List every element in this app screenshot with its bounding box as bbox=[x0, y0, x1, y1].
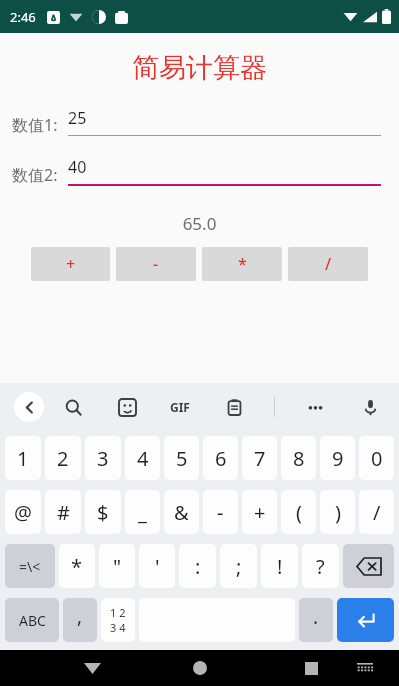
staticText: 简易计算器 bbox=[0, 51, 399, 85]
staticText: , bbox=[77, 603, 83, 629]
staticText: ? bbox=[316, 553, 325, 580]
button[interactable]: + bbox=[242, 490, 277, 534]
button[interactable]: 3 bbox=[85, 436, 121, 480]
staticText: + bbox=[254, 499, 266, 526]
staticText: ) bbox=[335, 499, 341, 526]
button[interactable]: Voice input bbox=[355, 392, 385, 422]
button[interactable]: 4 bbox=[125, 436, 160, 480]
button[interactable]: Numbers bbox=[101, 598, 135, 642]
button[interactable]: Home bbox=[184, 652, 216, 684]
staticText: - bbox=[217, 499, 224, 526]
staticText: 7 bbox=[254, 445, 266, 472]
staticText: 2 bbox=[57, 445, 69, 472]
button[interactable]: 6 bbox=[203, 436, 238, 480]
staticText: 数值1: bbox=[12, 114, 58, 136]
button[interactable]: * bbox=[59, 544, 95, 588]
button[interactable]: Search bbox=[58, 392, 88, 422]
staticText: . bbox=[313, 604, 319, 630]
staticText: & bbox=[174, 499, 189, 526]
button[interactable]: 9 bbox=[320, 436, 355, 480]
button[interactable]: / bbox=[288, 247, 368, 281]
staticText: $ bbox=[97, 499, 109, 526]
button[interactable]: , bbox=[63, 598, 97, 642]
button[interactable]: _ bbox=[125, 490, 160, 534]
button[interactable]: Backspace bbox=[343, 544, 394, 588]
staticText: =\< bbox=[19, 557, 41, 576]
button[interactable]: & bbox=[164, 490, 199, 534]
staticText: / bbox=[373, 499, 381, 526]
button[interactable]: : bbox=[179, 544, 216, 588]
staticText: * bbox=[71, 553, 83, 580]
staticText: : bbox=[195, 553, 201, 580]
button[interactable]: . bbox=[299, 598, 333, 642]
button[interactable]: Switch keyboard bbox=[351, 654, 379, 682]
staticText: 1 bbox=[17, 445, 29, 472]
button[interactable]: ) bbox=[320, 490, 355, 534]
button[interactable]: Back bbox=[14, 392, 44, 422]
button[interactable]: 数值2: bbox=[12, 156, 381, 186]
button[interactable]: =\< bbox=[5, 544, 55, 588]
button[interactable]: ( bbox=[281, 490, 316, 534]
button[interactable]: * bbox=[202, 247, 282, 281]
staticText: ; bbox=[236, 553, 242, 580]
button[interactable]: 1 bbox=[5, 436, 41, 480]
button[interactable]: 2 bbox=[45, 436, 81, 480]
button[interactable]: @ bbox=[5, 490, 41, 534]
staticText: _ bbox=[138, 499, 147, 526]
staticText: ( bbox=[296, 499, 302, 526]
button[interactable]: Stickers bbox=[112, 392, 142, 422]
staticText: ' bbox=[155, 553, 160, 580]
button[interactable]: GIF bbox=[166, 395, 194, 419]
button[interactable]: $ bbox=[85, 490, 121, 534]
button[interactable]: Clipboard bbox=[219, 392, 249, 422]
button[interactable]: ; bbox=[220, 544, 257, 588]
staticText: 40 bbox=[68, 156, 87, 178]
staticText: " bbox=[113, 553, 122, 580]
button[interactable]: 8 bbox=[281, 436, 316, 480]
staticText: 5 bbox=[176, 445, 188, 472]
staticText: @ bbox=[14, 499, 32, 526]
staticText: 0 bbox=[371, 445, 383, 472]
button[interactable]: " bbox=[99, 544, 135, 588]
staticText: 3 bbox=[97, 445, 109, 472]
button[interactable]: ! bbox=[261, 544, 298, 588]
staticText: ABC bbox=[19, 611, 46, 630]
button[interactable]: 7 bbox=[242, 436, 277, 480]
staticText: 6 bbox=[215, 445, 227, 472]
button[interactable]: 数值1: bbox=[12, 107, 381, 136]
button[interactable]: - bbox=[116, 247, 196, 281]
staticText: # bbox=[57, 499, 70, 526]
staticText: 8 bbox=[293, 445, 305, 472]
button[interactable]: - bbox=[203, 490, 238, 534]
button[interactable]: Enter bbox=[337, 598, 394, 642]
staticText: 2:46 bbox=[10, 8, 36, 26]
staticText: - bbox=[153, 253, 159, 275]
staticText: 4 bbox=[137, 445, 149, 472]
staticText: 25 bbox=[68, 107, 87, 129]
button[interactable]: ABC bbox=[5, 598, 59, 642]
button[interactable]: / bbox=[359, 490, 394, 534]
staticText: / bbox=[325, 253, 332, 275]
staticText: 3 4 bbox=[110, 620, 126, 635]
staticText: GIF bbox=[170, 399, 190, 415]
button[interactable]: # bbox=[45, 490, 81, 534]
staticText: 9 bbox=[332, 445, 344, 472]
button[interactable]: 5 bbox=[164, 436, 199, 480]
staticText: 65.0 bbox=[0, 212, 399, 235]
button[interactable]: ' bbox=[139, 544, 175, 588]
staticText: + bbox=[66, 253, 76, 275]
button[interactable]: Hide keyboard bbox=[76, 652, 108, 684]
button[interactable]: + bbox=[31, 247, 110, 281]
staticText: * bbox=[238, 253, 247, 275]
button[interactable]: More options bbox=[300, 392, 330, 422]
staticText: ! bbox=[277, 553, 283, 580]
button[interactable]: ? bbox=[302, 544, 339, 588]
button[interactable]: 0 bbox=[359, 436, 394, 480]
button[interactable]: Recents bbox=[295, 652, 327, 684]
staticText: 1 2 bbox=[110, 605, 126, 620]
staticText: 数值2: bbox=[12, 164, 58, 186]
